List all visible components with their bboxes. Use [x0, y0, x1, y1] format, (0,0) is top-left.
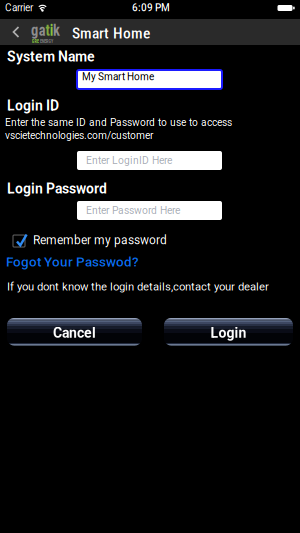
staticText: Smart Home: [72, 24, 150, 42]
staticText: i: [53, 20, 57, 40]
staticText: ENERGY: [41, 38, 57, 44]
staticText: t: [48, 20, 53, 40]
button[interactable]: Login: [164, 318, 293, 345]
staticText: If you dont know the login details,conta…: [7, 280, 269, 293]
staticText: Enter Password Here: [86, 204, 180, 217]
button[interactable]: Fogot Your Passwod?: [0, 254, 139, 270]
staticText: Cancel: [53, 325, 96, 341]
staticText: Login Password: [7, 180, 107, 197]
staticText: System Name: [7, 48, 95, 65]
staticText: GRE: [32, 38, 40, 44]
staticText: 6:09 PM: [132, 2, 170, 14]
button[interactable]: Login Password: [77, 201, 222, 220]
staticText: Enter the same ID and Password to use to…: [5, 116, 232, 128]
button[interactable]: System Name: [77, 70, 222, 89]
staticText: Remember my password: [33, 233, 167, 247]
staticText: Enter LoginID Here: [86, 154, 172, 167]
staticText: Fogot Your Passwod?: [6, 254, 139, 270]
staticText: Login ID: [7, 97, 59, 114]
button[interactable]: Login ID: [77, 151, 222, 170]
staticText: k: [57, 20, 65, 40]
staticText: Login: [210, 325, 246, 341]
staticText: My Smart Home: [82, 71, 154, 83]
button[interactable]: Back: [0, 19, 21, 45]
staticText: Carrier: [5, 2, 33, 14]
staticText: vscietechnologies.com/customer: [5, 129, 153, 141]
button[interactable]: Cancel: [7, 318, 142, 345]
button[interactable]: Remember my password: [0, 233, 167, 247]
staticText: ga: [31, 20, 48, 40]
